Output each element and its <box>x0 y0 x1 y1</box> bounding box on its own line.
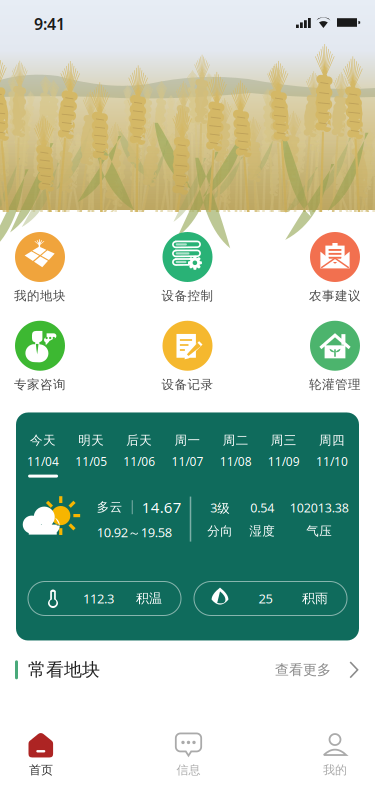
staticText: 后天 <box>126 432 152 448</box>
staticText: 25 <box>258 590 272 607</box>
button[interactable]: 设备记录 <box>161 321 213 392</box>
button[interactable]: 周三 <box>260 432 308 478</box>
staticText: 设备控制 <box>161 288 213 304</box>
staticText: 今天 <box>30 432 56 448</box>
staticText: 11/08 <box>220 453 252 469</box>
staticText: 10.92～19.58 <box>97 523 172 541</box>
button[interactable]: 农事建议 <box>309 232 361 304</box>
staticText: 专家咨询 <box>14 377 66 392</box>
staticText: 多云 <box>97 499 123 515</box>
button[interactable]: 周一 <box>163 432 211 478</box>
staticText: 11/07 <box>171 453 203 469</box>
button[interactable]: 设备控制 <box>161 232 213 304</box>
staticText: 湿度 <box>249 523 275 539</box>
staticText: 9:41 <box>34 13 65 35</box>
staticText: 积温 <box>136 590 162 607</box>
staticText: 11/06 <box>123 453 155 469</box>
staticText: 11/09 <box>268 453 300 469</box>
staticText: 周二 <box>223 432 249 448</box>
staticText: 102013.38 <box>290 499 349 516</box>
staticText: 明天 <box>78 432 104 448</box>
staticText: 积雨 <box>302 590 328 607</box>
staticText: 设备记录 <box>161 377 213 392</box>
staticText: 常看地块 <box>28 658 100 681</box>
staticText: 农事建议 <box>309 288 361 304</box>
button[interactable]: 明天 <box>67 432 115 478</box>
button[interactable]: 周二 <box>212 432 260 478</box>
staticText: 我的 <box>323 762 347 777</box>
staticText: 周三 <box>271 432 297 448</box>
staticText: 0.54 <box>250 499 274 516</box>
staticText: 3级 <box>210 499 230 516</box>
button[interactable]: 查看更多 <box>275 661 359 679</box>
staticText: 周四 <box>319 432 345 448</box>
staticText: 11/04 <box>27 453 59 469</box>
staticText: 查看更多 <box>275 661 331 679</box>
button[interactable]: 周四 <box>308 432 356 478</box>
staticText: 11/10 <box>316 453 348 469</box>
staticText: 轮灌管理 <box>309 377 361 392</box>
button[interactable]: 今天 <box>19 432 67 478</box>
button[interactable]: 信息 <box>175 732 202 777</box>
staticText: 首页 <box>29 762 53 777</box>
staticText: 我的地块 <box>14 288 66 304</box>
button[interactable]: 我的 <box>322 732 347 777</box>
staticText: 信息 <box>176 762 200 777</box>
staticText: 11/05 <box>75 453 107 469</box>
staticText: 112.3 <box>83 590 114 607</box>
staticText: 分向 <box>207 523 233 539</box>
button[interactable]: 后天 <box>115 432 163 478</box>
staticText: 周一 <box>174 432 200 448</box>
button[interactable]: 我的地块 <box>14 232 66 304</box>
button[interactable]: 首页 <box>28 732 53 777</box>
button[interactable]: 专家咨询 <box>14 321 66 392</box>
staticText: 气压 <box>306 523 332 539</box>
staticText: 14.67 <box>142 497 182 517</box>
button[interactable]: 轮灌管理 <box>309 321 361 392</box>
